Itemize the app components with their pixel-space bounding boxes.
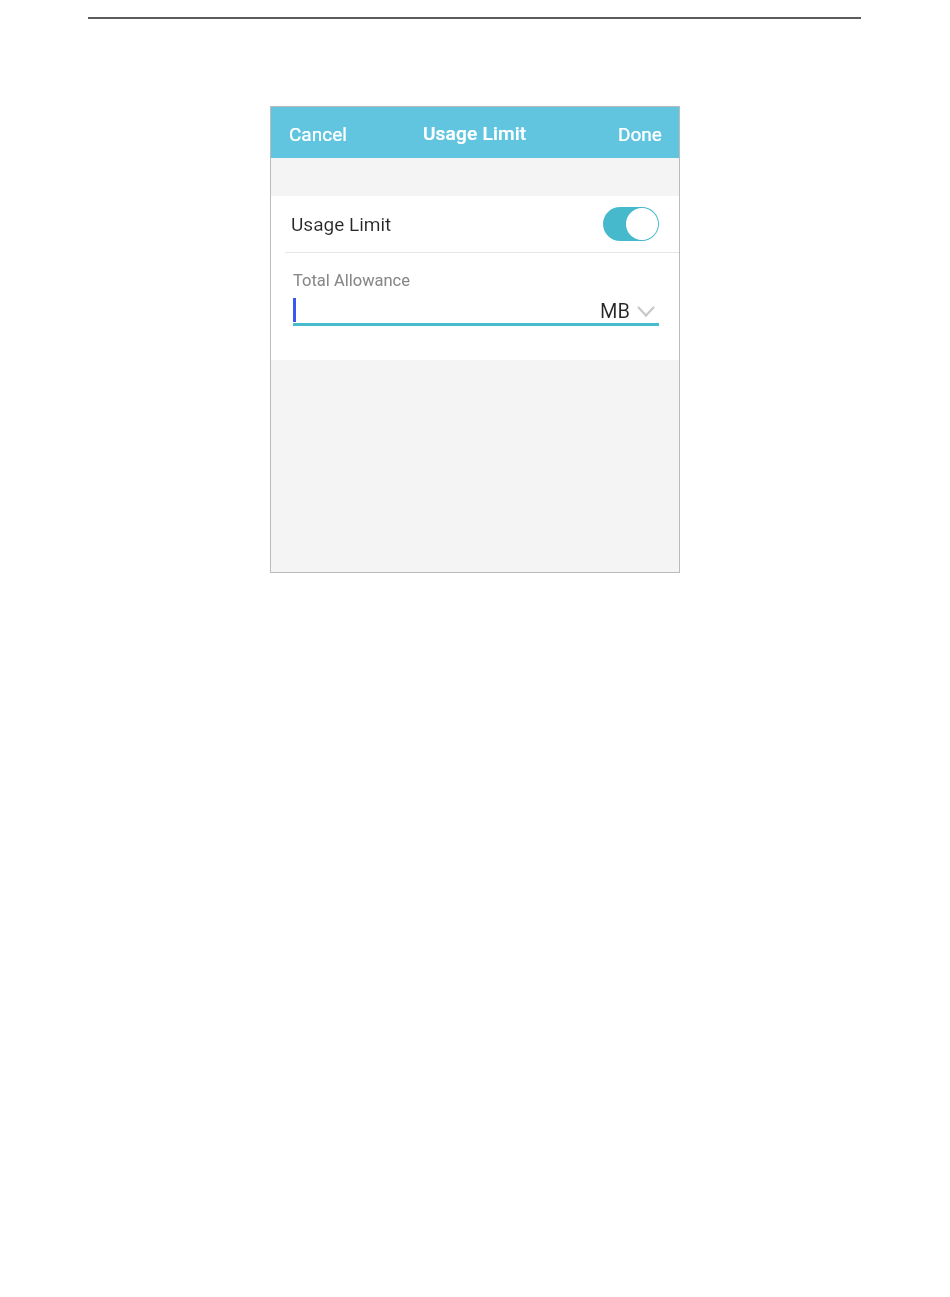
button[interactable]: Usage Limit toggle, on [603, 207, 659, 241]
staticText: MB [600, 299, 630, 322]
button[interactable]: MB [293, 294, 659, 324]
button[interactable]: Cancel [270, 108, 366, 156]
staticText: Cancel [289, 123, 347, 145]
staticText: Usage Limit [291, 213, 392, 235]
staticText: Total Allowance [293, 271, 411, 290]
staticText: Usage Limit [423, 122, 527, 144]
button[interactable]: Usage Limit [270, 196, 680, 252]
staticText: Done [618, 123, 662, 145]
button[interactable]: Done [601, 108, 680, 156]
other: Unit dropdown [638, 303, 654, 318]
